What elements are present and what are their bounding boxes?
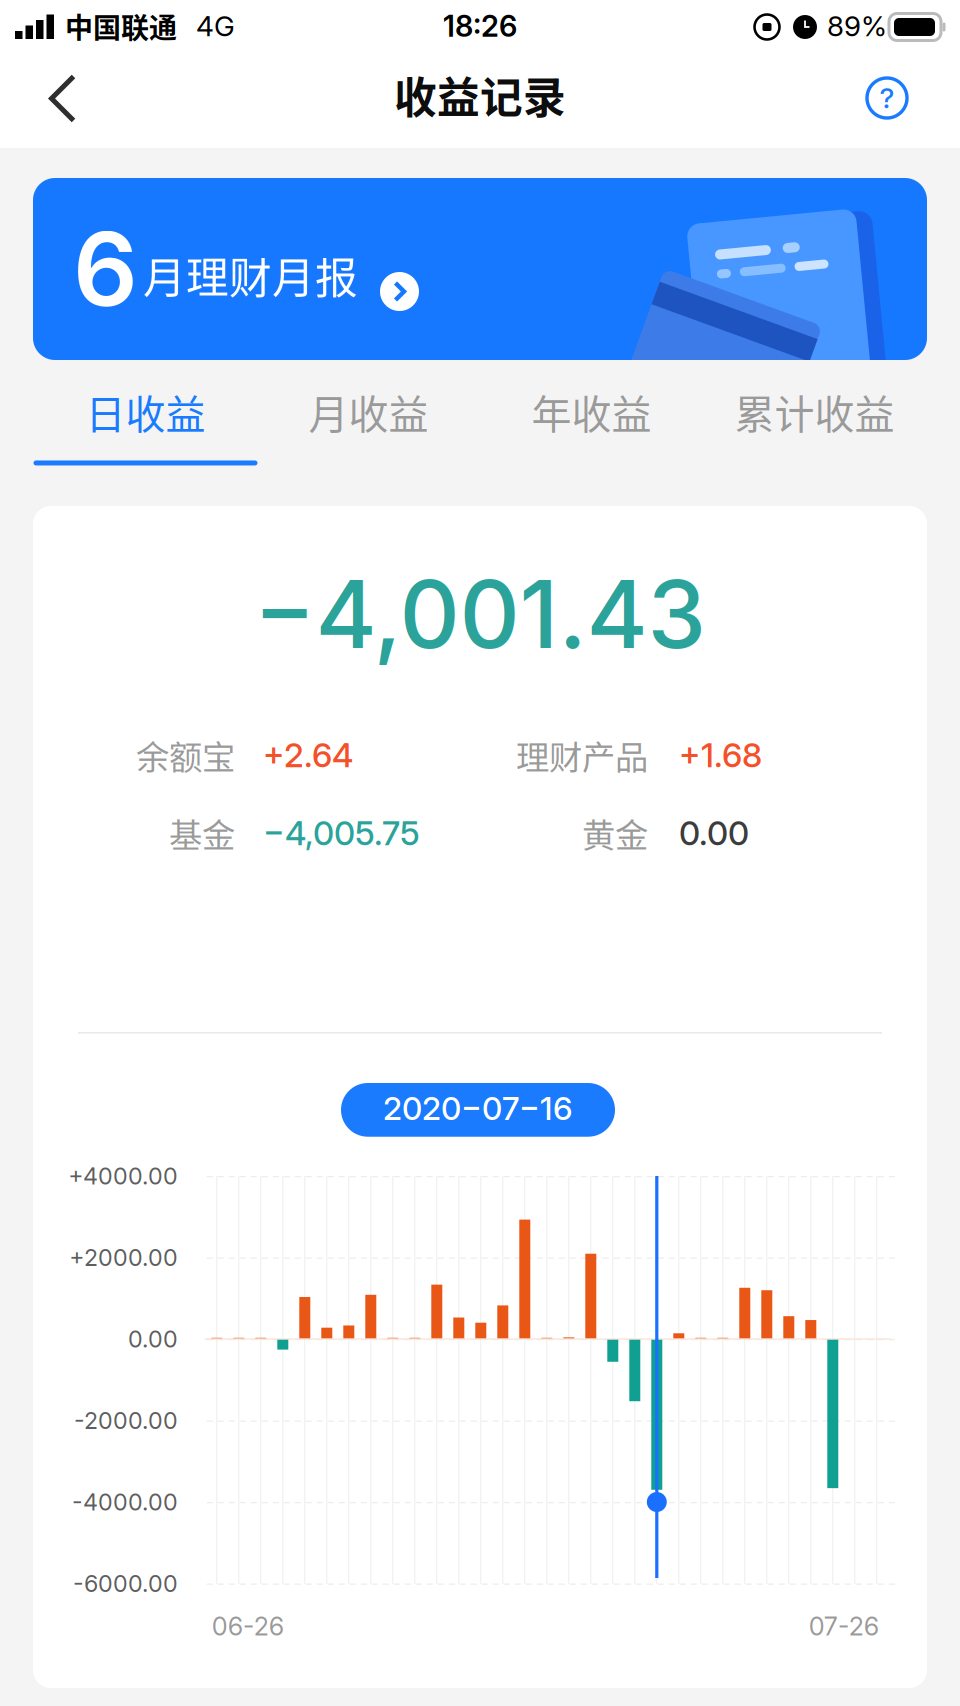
staticText: +4000.00 xyxy=(68,1162,178,1190)
staticText: 基金 xyxy=(169,809,235,857)
staticText: 6 xyxy=(73,208,138,330)
staticText: 0.00 xyxy=(679,813,749,853)
button[interactable]: 月收益 xyxy=(257,384,480,464)
staticText: +1.68 xyxy=(679,735,762,775)
staticText: 月理财月报 xyxy=(143,244,358,306)
staticText: ? xyxy=(879,81,894,115)
staticText: −4,005.75 xyxy=(263,813,420,853)
staticText: -4000.00 xyxy=(72,1488,178,1516)
staticText: 收益记录 xyxy=(394,64,566,126)
staticText: 4G xyxy=(196,9,235,43)
button[interactable]: 帮助 xyxy=(838,54,960,148)
staticText: 累计收益 xyxy=(734,382,894,440)
staticText: +2000.00 xyxy=(69,1243,178,1272)
staticText: 2020−07−16 xyxy=(383,1089,573,1128)
staticText: 06-26 xyxy=(212,1611,284,1642)
button[interactable]: 返回 xyxy=(0,54,103,148)
staticText: 月收益 xyxy=(308,382,428,440)
button[interactable]: 日收益 xyxy=(34,384,257,464)
staticText: −4,001.43 xyxy=(253,557,706,670)
staticText: 年收益 xyxy=(531,382,651,440)
staticText: 576 xyxy=(790,389,809,402)
staticText: 89% xyxy=(827,9,887,43)
staticText: 07-26 xyxy=(809,1611,879,1642)
staticText: 0.00 xyxy=(128,1325,178,1353)
staticText: 余额宝 xyxy=(136,731,235,779)
button[interactable]: 累计收益 xyxy=(703,384,926,464)
staticText: 中国联通 xyxy=(65,6,177,46)
staticText: 日收益 xyxy=(85,382,205,440)
button[interactable]: 年收益 xyxy=(480,384,703,464)
staticText: -6000.00 xyxy=(73,1569,178,1598)
staticText: 理财产品 xyxy=(516,731,648,779)
staticText: -2000.00 xyxy=(74,1406,178,1435)
staticText: 黄金 xyxy=(582,809,648,857)
staticText: 18:26 xyxy=(443,8,517,44)
button[interactable]: 576 xyxy=(33,178,927,360)
staticText: +2.64 xyxy=(263,735,353,775)
